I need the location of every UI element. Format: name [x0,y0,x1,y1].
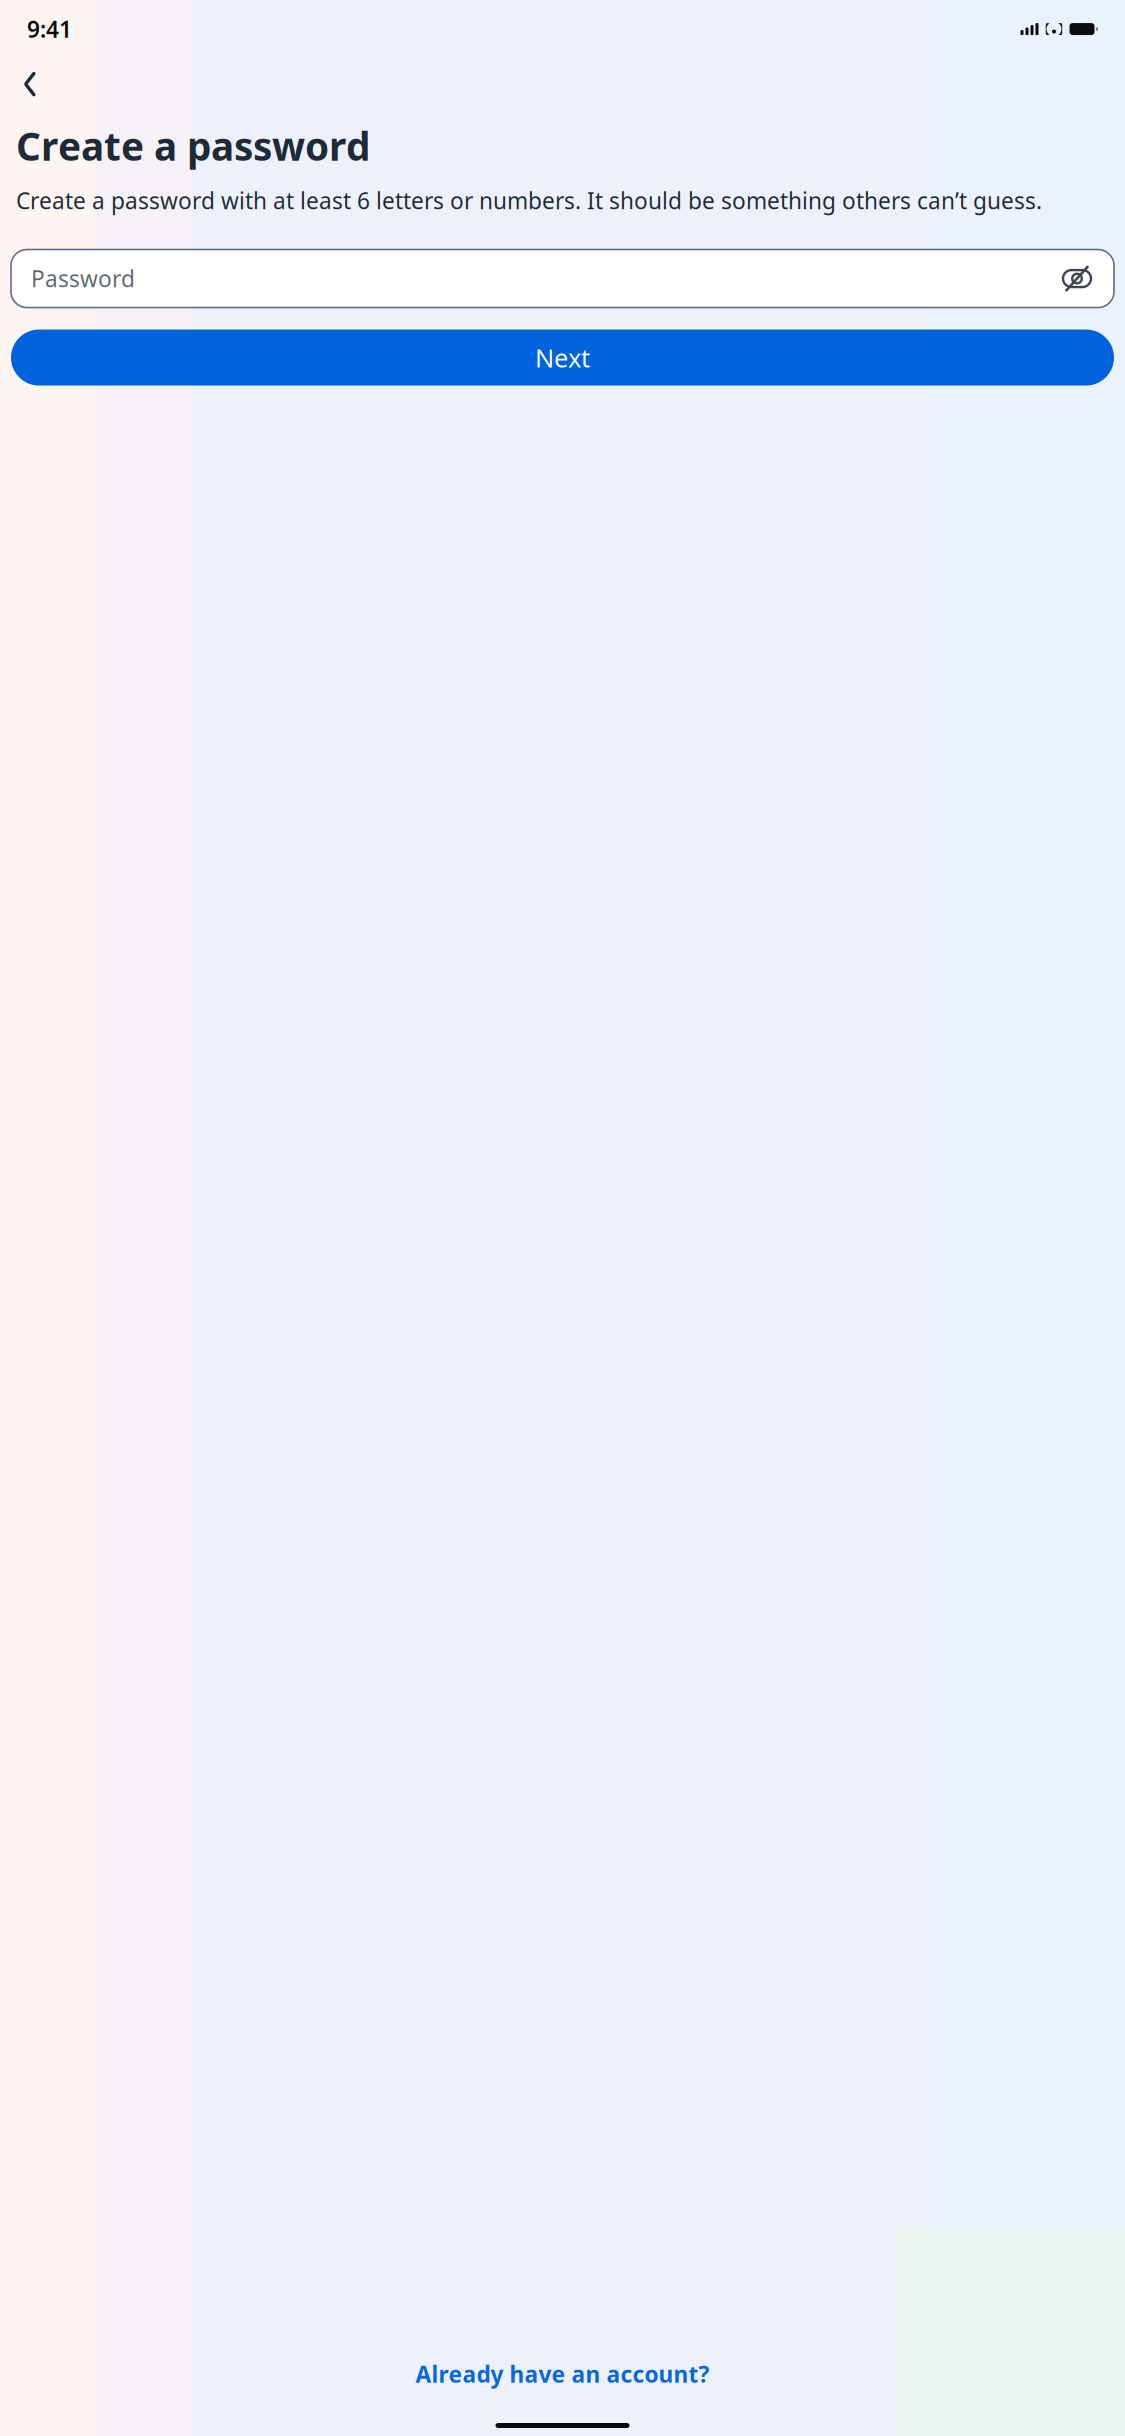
staticText: Create a password [16,120,370,171]
staticText: Already have an account? [415,2359,709,2389]
button[interactable]: Back [8,62,52,106]
button[interactable]: Password [11,250,1114,308]
button[interactable]: Show password [1060,262,1094,296]
staticText: Create a password with at least 6 letter… [16,185,1042,215]
staticText: Next [535,341,590,374]
button[interactable]: Already have an account? [399,2351,725,2397]
staticText: 9:41 [27,14,72,44]
staticText: Password [31,263,135,294]
button[interactable]: Next [11,330,1114,386]
